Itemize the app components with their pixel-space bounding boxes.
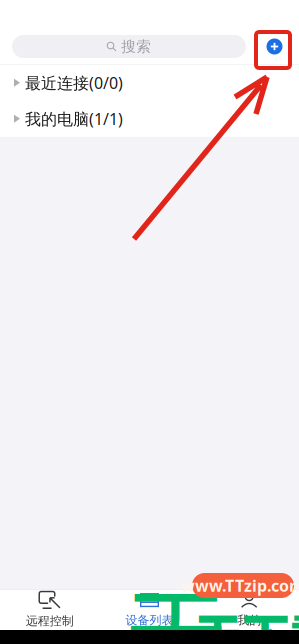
button[interactable]: 添加设备 [256,35,293,58]
button[interactable]: 我的电脑(1/1) [0,101,299,137]
button[interactable]: 设备列表 [100,590,199,630]
staticText: 远程控制 [26,614,74,628]
staticText: 我的电脑(1/1) [25,108,123,129]
staticText: 设备列表 [125,613,173,628]
button[interactable]: 我的 [199,590,299,630]
staticText: 我的 [237,613,261,628]
staticText: www.TTzip.com [181,575,299,596]
staticText: 天下載 [194,598,299,644]
staticText: 天 [124,553,228,644]
staticText: 最近连接(0/0) [25,72,123,93]
button[interactable]: 最近连接(0/0) [0,65,299,101]
button[interactable]: 远程控制 [0,590,100,630]
staticText: 搜索 [121,37,151,55]
